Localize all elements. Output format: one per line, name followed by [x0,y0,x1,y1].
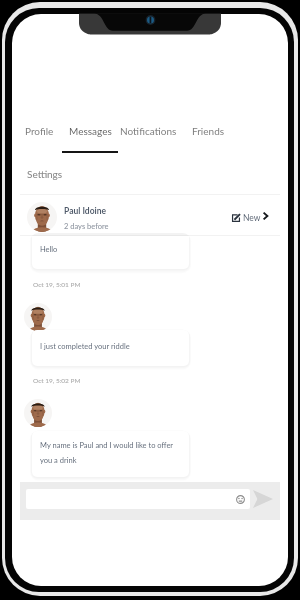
other: Emoji [236,495,245,504]
staticText: Oct 19, 5:02 PM [33,377,81,385]
staticText: New [243,213,261,223]
staticText: Oct 19, 5:01 PM [33,281,81,289]
staticText: Friends [192,125,225,137]
button[interactable]: My name is Paul and I would like to offe… [32,431,189,477]
staticText: I just completed your riddle [40,342,130,351]
button[interactable]: Profile [18,118,61,156]
staticText: Paul Idoine [64,206,107,216]
button[interactable]: Paul Idoine [20,196,288,235]
staticText: Notifications [120,125,177,137]
staticText: 2 days before [64,222,109,231]
button[interactable]: Hello [32,236,189,269]
button[interactable]: I just completed your riddle [32,330,189,366]
button[interactable]: Friends [185,118,230,156]
button[interactable]: Messages [62,118,118,156]
staticText: Profile [25,125,54,137]
staticText: My name is Paul and I would like to offe… [40,441,174,450]
button[interactable]: Notifications [113,118,183,156]
button[interactable]: Settings [27,168,63,180]
button[interactable]: Emoji [26,489,250,509]
staticText: you a drink [40,456,77,465]
button[interactable]: New message [224,206,282,224]
staticText: Messages [69,125,112,137]
button[interactable]: Send [253,490,273,508]
staticText: Hello [40,245,58,254]
